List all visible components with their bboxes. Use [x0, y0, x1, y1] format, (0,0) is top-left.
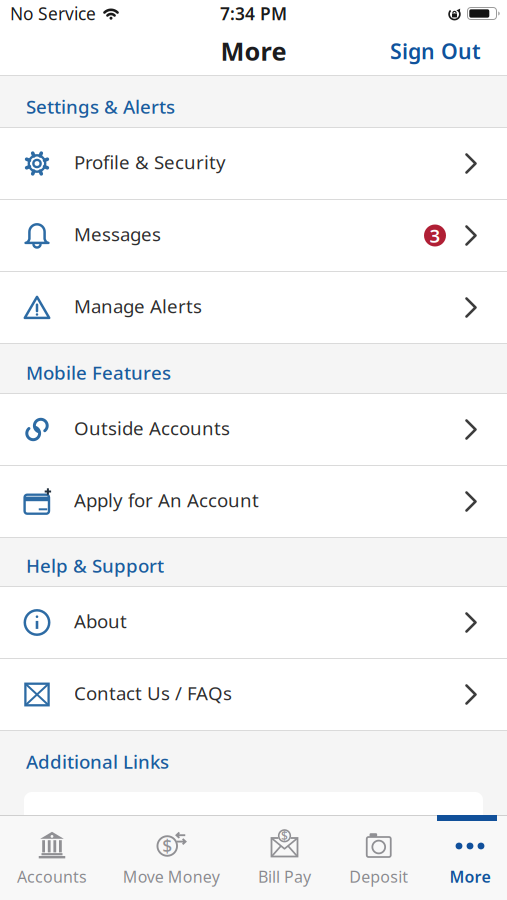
button[interactable]: Outside Accounts [0, 394, 507, 465]
button[interactable]: Contact Us / FAQs [0, 659, 507, 730]
staticText: Additional Links [26, 749, 169, 774]
staticText: 7:34 PM [220, 2, 287, 25]
staticText: No Service [10, 2, 96, 25]
button[interactable]: About [0, 587, 507, 658]
staticText: Move Money [123, 866, 220, 887]
staticText: More [449, 866, 490, 887]
staticText: Mobile Features [26, 360, 171, 385]
staticText: Settings & Alerts [26, 94, 175, 119]
staticText: Manage Alerts [74, 294, 202, 318]
staticText: Outside Accounts [74, 416, 230, 440]
button[interactable]: $ [119, 830, 223, 887]
staticText: Accounts [17, 866, 87, 887]
button[interactable]: $ [252, 830, 316, 887]
staticText: Help & Support [26, 553, 164, 578]
staticText: Bill Pay [258, 866, 311, 887]
button[interactable]: Apply for An Account [0, 466, 507, 537]
staticText: 3 [429, 223, 440, 248]
staticText: More [220, 34, 286, 68]
button[interactable]: More [441, 830, 499, 887]
staticText: Contact Us / FAQs [74, 681, 232, 705]
staticText: $ [162, 834, 172, 857]
staticText: Messages [74, 222, 161, 246]
staticText: About [74, 609, 127, 633]
staticText: Deposit [349, 866, 408, 887]
staticText: $ [281, 828, 288, 844]
staticText: Apply for An Account [74, 488, 259, 512]
staticText: Sign Out [390, 37, 481, 65]
staticText: Profile & Security [74, 150, 226, 174]
button[interactable]: Messages [0, 200, 507, 271]
button[interactable]: Sign Out [390, 37, 507, 65]
button[interactable]: Accounts [14, 830, 90, 887]
button[interactable]: Profile & Security [0, 128, 507, 199]
button[interactable]: Manage Alerts [0, 272, 507, 343]
button[interactable]: Deposit [346, 830, 412, 887]
